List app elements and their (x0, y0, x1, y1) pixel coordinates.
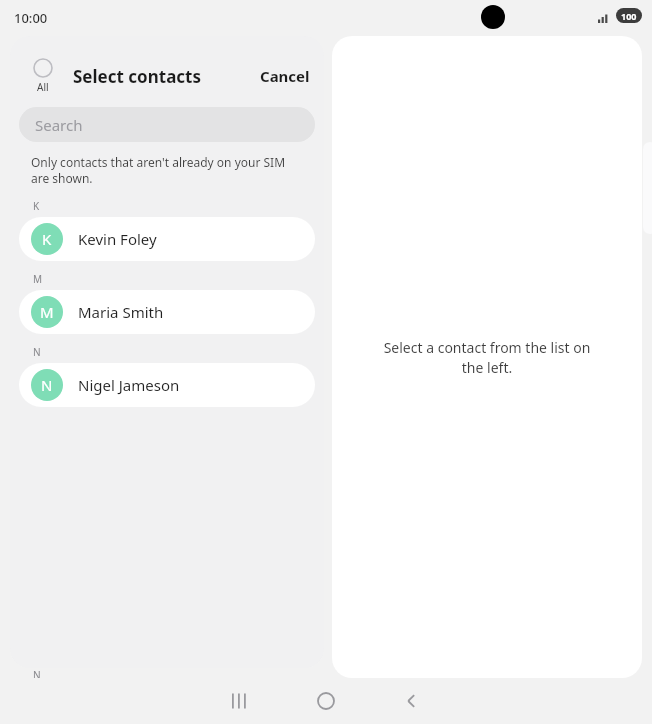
staticText: M (33, 272, 43, 286)
staticText: Cancel (260, 66, 310, 86)
staticText: Maria Smith (78, 302, 164, 322)
staticText: 10:00 (14, 9, 48, 27)
staticText: Nigel Jameson (78, 375, 180, 395)
staticText: Search (35, 115, 83, 135)
staticText: Only contacts that aren't already on you… (31, 154, 300, 187)
button[interactable]: K (19, 217, 315, 261)
button[interactable]: Cancel (250, 58, 320, 94)
button[interactable]: M (19, 290, 315, 334)
button[interactable]: Home (299, 678, 353, 724)
staticText: M (40, 302, 54, 322)
staticText: N (33, 668, 41, 682)
staticText: K (42, 229, 52, 249)
button[interactable]: Back (385, 678, 439, 724)
staticText: 100 (621, 10, 637, 22)
staticText: Kevin Foley (78, 229, 157, 249)
staticText: Select contacts (73, 65, 201, 88)
staticText: Select a contact from the list on the le… (372, 338, 602, 377)
button[interactable]: Search (19, 107, 315, 142)
button[interactable]: Recent apps (213, 678, 267, 724)
staticText: N (41, 375, 53, 395)
staticText: K (33, 199, 40, 213)
staticText: N (33, 345, 41, 359)
staticText: All (37, 80, 49, 94)
button[interactable]: Select all contacts (19, 56, 67, 96)
button[interactable]: N (19, 363, 315, 407)
